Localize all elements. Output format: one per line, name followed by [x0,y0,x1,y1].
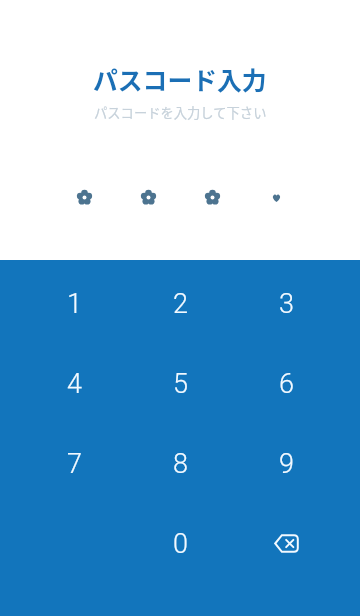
staticText: 3 [279,288,294,320]
staticText: 1 [67,288,82,320]
button[interactable]: 4 [21,344,127,424]
button[interactable]: 5 [127,344,233,424]
staticText: 8 [173,448,188,480]
button[interactable]: 7 [21,424,127,504]
button[interactable]: 8 [127,424,233,504]
staticText: 5 [173,368,188,400]
staticText: パスコードを入力して下さい [94,103,267,122]
button[interactable]: 1 [21,264,127,344]
staticText: 0 [173,528,188,560]
staticText: 6 [279,368,294,400]
staticText: 4 [67,368,82,400]
button[interactable]: Delete [233,504,339,584]
staticText: 2 [173,288,188,320]
button[interactable]: 0 [127,504,233,584]
button[interactable]: 2 [127,264,233,344]
staticText: パスコード入力 [93,61,267,97]
staticText: 7 [67,448,82,480]
staticText: 9 [279,448,294,480]
button[interactable]: 3 [233,264,339,344]
button[interactable]: 9 [233,424,339,504]
button[interactable]: 6 [233,344,339,424]
